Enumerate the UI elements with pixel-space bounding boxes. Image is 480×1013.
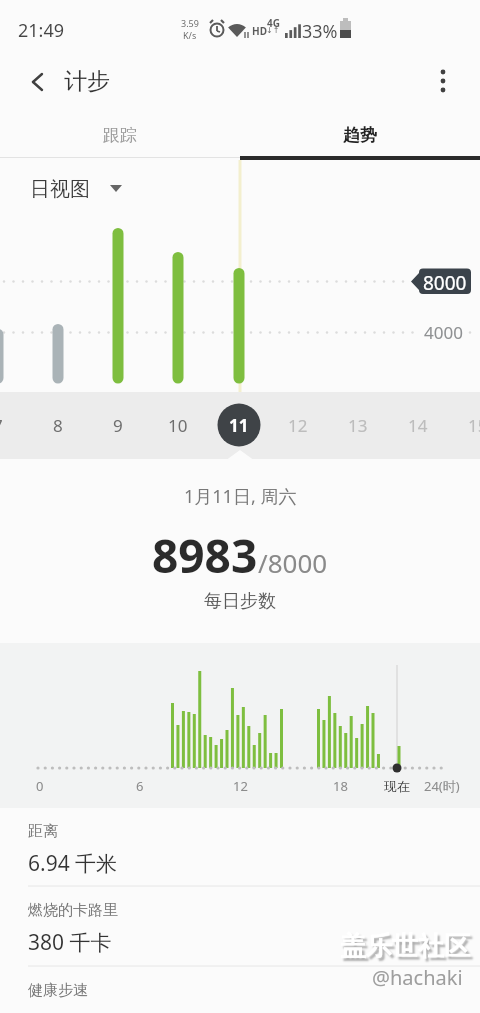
button[interactable]: 14 bbox=[388, 392, 448, 459]
button[interactable]: 12 bbox=[268, 392, 328, 459]
staticText: 14 bbox=[408, 414, 428, 437]
button[interactable]: 跟踪 bbox=[0, 112, 240, 158]
staticText: 趋势 bbox=[343, 125, 377, 146]
button[interactable]: 13 bbox=[328, 392, 388, 459]
staticText: 33% bbox=[302, 19, 338, 44]
staticText: 13 bbox=[348, 414, 368, 437]
button[interactable] bbox=[420, 58, 468, 106]
staticText: 6.94 千米 bbox=[28, 849, 118, 878]
staticText: 12 bbox=[288, 414, 308, 437]
staticText: 4000 bbox=[424, 321, 463, 343]
button[interactable]: 8 bbox=[28, 392, 88, 459]
staticText: 每日步数 bbox=[204, 590, 276, 613]
staticText: HD bbox=[252, 24, 267, 38]
staticText: 1月11日, 周六 bbox=[184, 484, 297, 509]
staticText: /8000 bbox=[258, 545, 328, 580]
button[interactable]: 7 bbox=[0, 392, 28, 459]
button[interactable]: 15 bbox=[448, 392, 480, 459]
staticText: 6 bbox=[136, 777, 144, 795]
staticText: K/s bbox=[183, 29, 197, 41]
button[interactable]: 健康步速 bbox=[0, 967, 480, 1013]
staticText: 8983 bbox=[152, 524, 258, 587]
staticText: 盖乐世社区 bbox=[340, 930, 470, 963]
staticText: 24(时) bbox=[424, 777, 460, 795]
button[interactable]: 10 bbox=[148, 392, 208, 459]
staticText: 10 bbox=[168, 414, 188, 437]
staticText: 0 bbox=[36, 777, 44, 795]
staticText: 18 bbox=[333, 777, 348, 795]
staticText: 4G bbox=[267, 16, 280, 30]
staticText: 日视图 bbox=[30, 177, 90, 202]
staticText: 12 bbox=[233, 777, 248, 795]
button[interactable]: 11 bbox=[209, 392, 269, 459]
staticText: 21:49 bbox=[18, 18, 65, 43]
staticText: 11 bbox=[229, 414, 249, 437]
button[interactable]: 燃烧的卡路里 bbox=[0, 887, 480, 966]
staticText: 8000 bbox=[423, 270, 467, 292]
staticText: 3.59 bbox=[181, 17, 199, 29]
button[interactable] bbox=[16, 60, 60, 104]
staticText: 距离 bbox=[28, 822, 58, 841]
staticText: 15 bbox=[468, 414, 480, 437]
button[interactable]: 日视图 bbox=[20, 170, 136, 210]
staticText: 跟踪 bbox=[103, 125, 137, 146]
staticText: 计步 bbox=[64, 67, 110, 96]
staticText: 现在 bbox=[384, 778, 410, 794]
staticText: 健康步速 bbox=[28, 981, 88, 1000]
staticText: ↓↑ bbox=[266, 26, 280, 35]
staticText: 燃烧的卡路里 bbox=[28, 901, 118, 920]
staticText: 9 bbox=[113, 414, 123, 437]
button[interactable]: 距离 bbox=[0, 810, 480, 886]
staticText: 8 bbox=[53, 414, 63, 437]
staticText: 380 千卡 bbox=[28, 928, 112, 957]
button[interactable]: 9 bbox=[88, 392, 148, 459]
staticText: @hachaki bbox=[372, 964, 463, 991]
staticText: 7 bbox=[0, 414, 3, 437]
button[interactable]: 趋势 bbox=[240, 112, 480, 158]
